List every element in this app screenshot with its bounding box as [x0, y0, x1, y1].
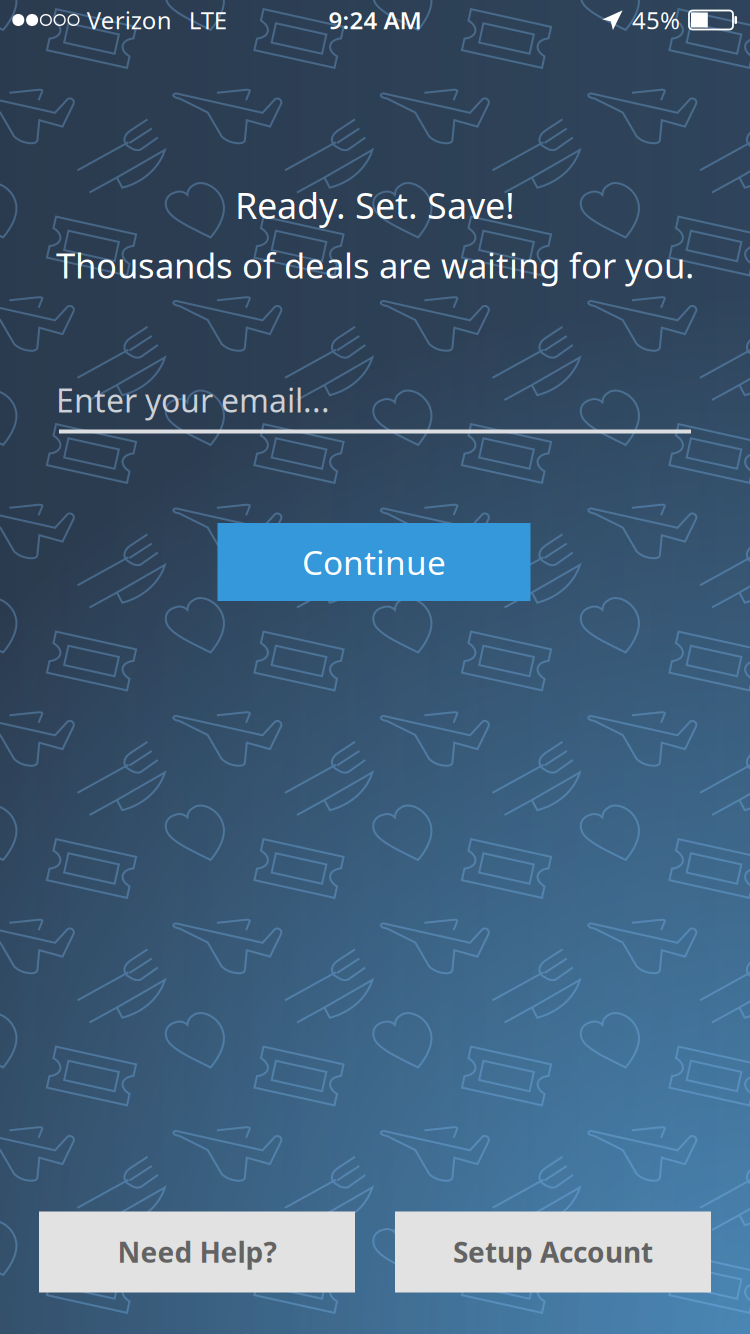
- button[interactable]: Need Help?: [39, 1211, 355, 1292]
- button[interactable]: Continue: [217, 523, 530, 601]
- button[interactable]: Setup Account: [395, 1211, 711, 1292]
- staticText: 9:24 AM: [328, 4, 421, 36]
- staticText: Thousands of deals are waiting for you.: [56, 242, 694, 288]
- staticText: Ready. Set. Save!: [235, 181, 515, 229]
- staticText: Enter your email...: [56, 379, 330, 421]
- staticText: Verizon: [87, 4, 172, 36]
- staticText: LTE: [189, 4, 227, 36]
- staticText: Setup Account: [453, 1233, 653, 1271]
- staticText: 45%: [632, 4, 680, 36]
- staticText: Continue: [302, 540, 446, 584]
- staticText: Need Help?: [117, 1233, 276, 1271]
